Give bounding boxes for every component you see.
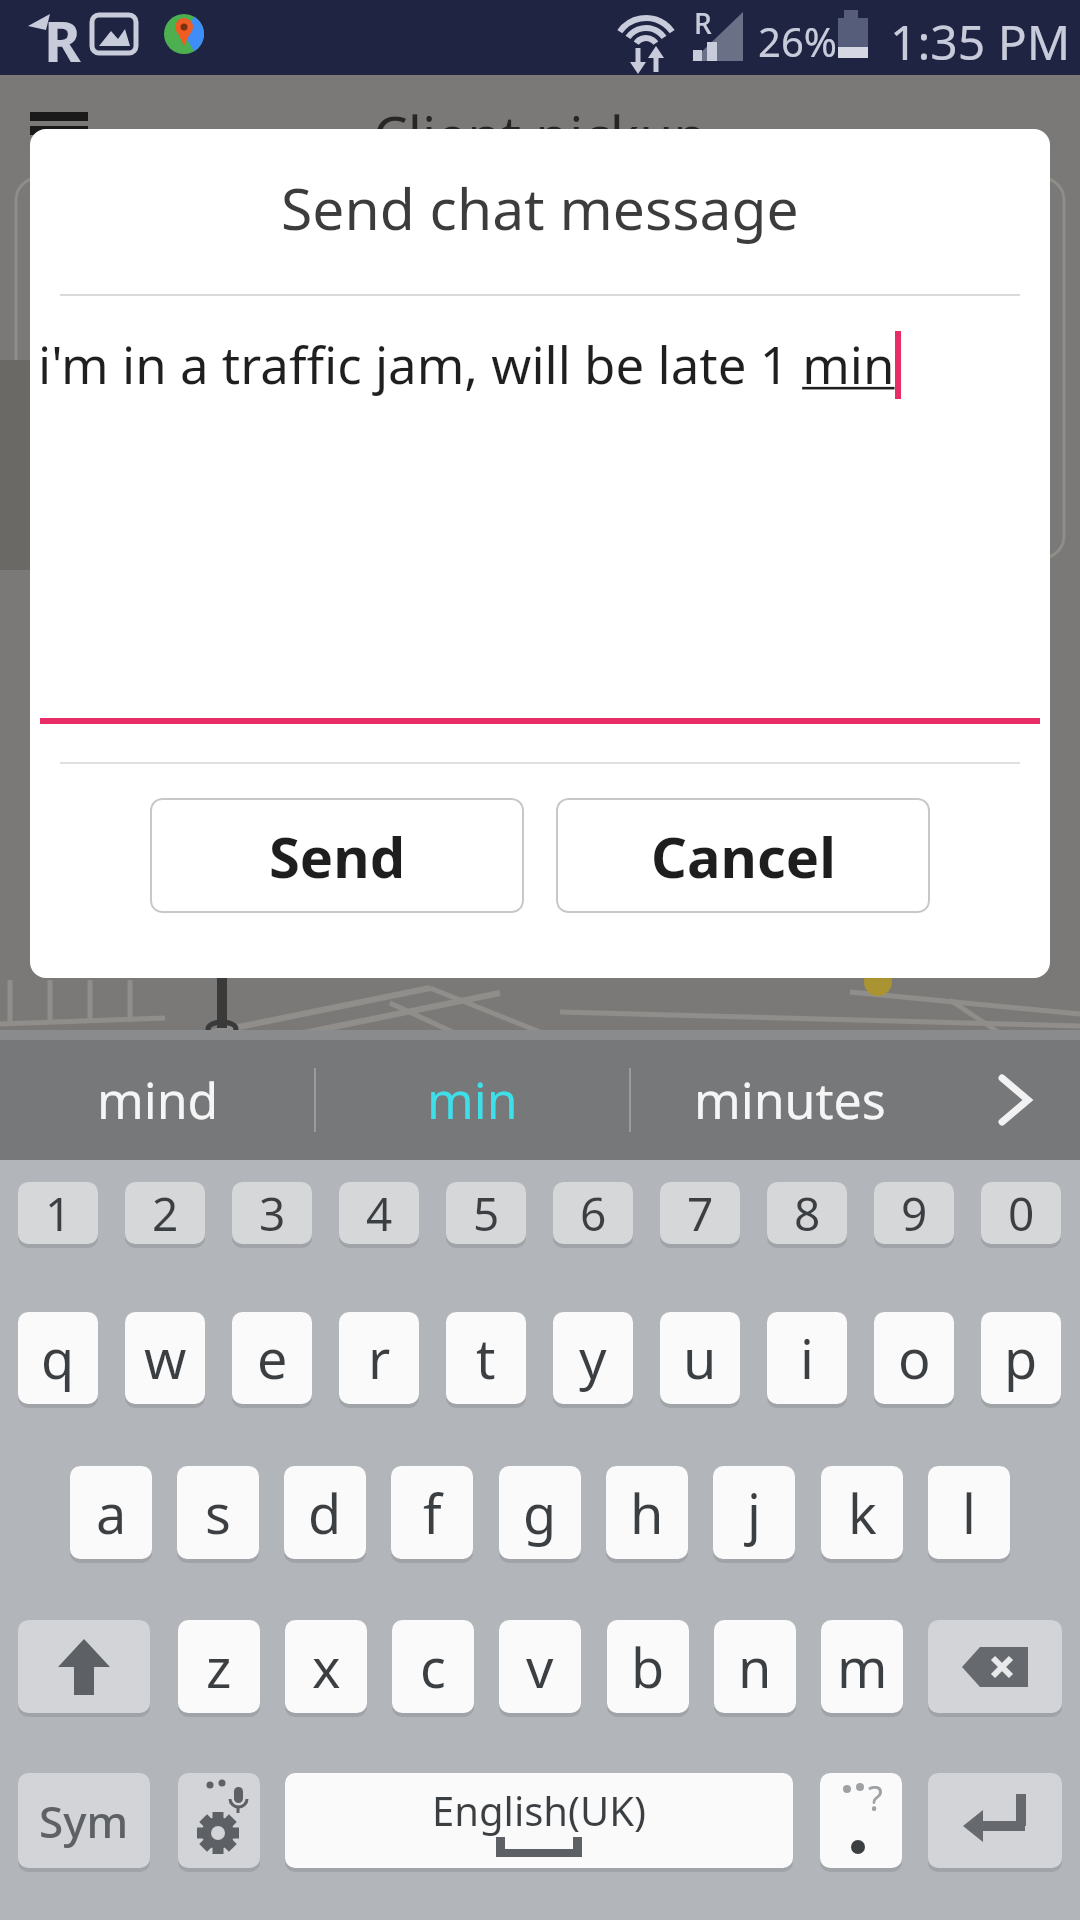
button[interactable]: k: [821, 1466, 903, 1559]
staticText: 5: [473, 1182, 500, 1244]
staticText: t: [476, 1321, 496, 1395]
staticText: 1: [45, 1182, 72, 1244]
button[interactable]: d: [284, 1466, 366, 1559]
button[interactable]: y: [553, 1312, 633, 1404]
button[interactable]: 6: [553, 1182, 633, 1244]
staticText: 26%: [758, 14, 837, 68]
button[interactable]: 3: [232, 1182, 312, 1244]
button[interactable]: v: [499, 1620, 581, 1713]
button[interactable]: 5: [446, 1182, 526, 1244]
staticText: 6: [580, 1182, 607, 1244]
staticText: l: [962, 1476, 976, 1550]
staticText: p: [1004, 1321, 1038, 1395]
button[interactable]: 7: [660, 1182, 740, 1244]
staticText: w: [144, 1321, 187, 1395]
button[interactable]: b: [607, 1620, 689, 1713]
button[interactable]: 8: [767, 1182, 847, 1244]
staticText: 0: [1008, 1182, 1035, 1244]
staticText: z: [206, 1630, 232, 1704]
button[interactable]: p: [981, 1312, 1061, 1404]
button[interactable]: [18, 1620, 150, 1713]
staticText: minutes: [694, 1066, 886, 1134]
button[interactable]: Cancel: [556, 798, 930, 913]
staticText: Client pickup: [0, 97, 1080, 172]
button[interactable]: h: [606, 1466, 688, 1559]
staticText: 8: [794, 1182, 821, 1244]
staticText: d: [308, 1476, 342, 1550]
button[interactable]: q: [18, 1312, 98, 1404]
button[interactable]: r: [339, 1312, 419, 1404]
staticText: s: [205, 1476, 231, 1550]
staticText: v: [526, 1630, 554, 1704]
staticText: b: [631, 1630, 665, 1704]
button[interactable]: c: [392, 1620, 474, 1713]
staticText: r: [368, 1321, 391, 1395]
staticText: c: [420, 1630, 446, 1704]
staticText: 9: [901, 1182, 928, 1244]
button[interactable]: f: [391, 1466, 473, 1559]
staticText: g: [523, 1476, 557, 1550]
button[interactable]: [928, 1620, 1062, 1713]
staticText: R: [44, 2, 81, 77]
button[interactable]: x: [285, 1620, 367, 1713]
staticText: Send chat message: [281, 169, 799, 247]
staticText: o: [898, 1321, 931, 1395]
button[interactable]: n: [714, 1620, 796, 1713]
staticText: q: [41, 1321, 75, 1395]
staticText: 7: [687, 1182, 714, 1244]
staticText: f: [423, 1476, 442, 1550]
button[interactable]: w: [125, 1312, 205, 1404]
staticText: 1:35 PM: [890, 9, 1071, 74]
staticText: e: [257, 1321, 288, 1395]
button[interactable]: m: [821, 1620, 903, 1713]
staticText: u: [683, 1321, 717, 1395]
button[interactable]: 9: [874, 1182, 954, 1244]
staticText: mind: [97, 1066, 219, 1134]
button[interactable]: j: [713, 1466, 795, 1559]
staticText: R: [694, 4, 712, 42]
button[interactable]: l: [928, 1466, 1010, 1559]
staticText: i: [800, 1321, 814, 1395]
button[interactable]: 2: [125, 1182, 205, 1244]
staticText: 3: [259, 1182, 286, 1244]
staticText: ?: [868, 1775, 883, 1821]
button[interactable]: o: [874, 1312, 954, 1404]
staticText: min: [427, 1066, 518, 1134]
staticText: English(UK): [432, 1783, 647, 1837]
button[interactable]: e: [232, 1312, 312, 1404]
button[interactable]: English(UK): [285, 1773, 793, 1868]
staticText: y: [579, 1321, 607, 1395]
staticText: k: [848, 1476, 877, 1550]
staticText: a: [96, 1476, 127, 1550]
staticText: h: [630, 1476, 664, 1550]
button[interactable]: s: [177, 1466, 259, 1559]
button[interactable]: [178, 1773, 260, 1868]
button[interactable]: min: [355, 1040, 590, 1160]
staticText: 4: [366, 1182, 393, 1244]
staticText: Send: [269, 818, 406, 894]
staticText: n: [738, 1630, 772, 1704]
button[interactable]: minutes: [672, 1040, 907, 1160]
button[interactable]: 0: [981, 1182, 1061, 1244]
button[interactable]: 4: [339, 1182, 419, 1244]
staticText: Sym: [39, 1791, 129, 1851]
button[interactable]: Send: [150, 798, 524, 913]
button[interactable]: mind: [40, 1040, 275, 1160]
button[interactable]: Sym: [18, 1773, 150, 1868]
staticText: i'm in a traffic jam, will be late 1 min: [38, 329, 895, 398]
button[interactable]: u: [660, 1312, 740, 1404]
staticText: x: [312, 1630, 341, 1704]
button[interactable]: [980, 1060, 1060, 1140]
button[interactable]: ?: [820, 1773, 902, 1868]
staticText: j: [747, 1476, 761, 1550]
button[interactable]: a: [70, 1466, 152, 1559]
button[interactable]: g: [499, 1466, 581, 1559]
button[interactable]: [928, 1773, 1062, 1868]
staticText: 2: [152, 1182, 179, 1244]
button[interactable]: 1: [18, 1182, 98, 1244]
button[interactable]: z: [178, 1620, 260, 1713]
button[interactable]: t: [446, 1312, 526, 1404]
button[interactable]: i: [767, 1312, 847, 1404]
staticText: m: [837, 1630, 888, 1704]
staticText: Cancel: [651, 818, 836, 894]
